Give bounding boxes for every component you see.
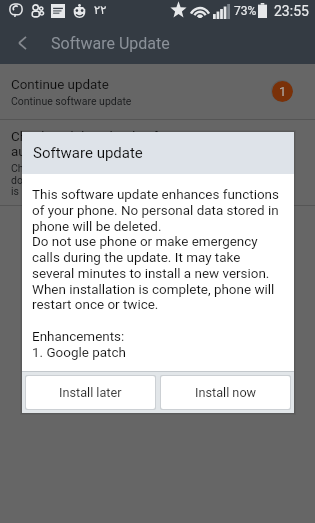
staticText: of your phone. No personal data stored i…: [32, 203, 279, 219]
staticText: Continue update: [11, 77, 109, 93]
staticText: phone will be deleted.: [32, 219, 162, 235]
staticText: 23:55: [274, 3, 309, 19]
button[interactable]: Check and download software: [0, 120, 315, 205]
staticText: restart once or twice.: [32, 297, 159, 313]
staticText: Install later: [59, 385, 122, 400]
button[interactable]: Install later: [26, 376, 155, 409]
staticText: This software update enhances functions: [32, 187, 279, 203]
staticText: 1: [279, 84, 287, 99]
staticText: Software Update: [51, 34, 170, 53]
button[interactable]: Continue update: [0, 64, 315, 119]
staticText: Install now: [195, 385, 257, 400]
staticText: automatically: [11, 144, 92, 160]
staticText: 1. Google patch: [32, 345, 126, 361]
staticText: Check for software updates and: [11, 162, 160, 174]
staticText: Do not use phone or make emergency: [32, 234, 258, 250]
staticText: Check and download software: [11, 129, 192, 145]
staticText: ٢٢: [94, 3, 107, 16]
staticText: several minutes to install a new version…: [32, 266, 270, 282]
button[interactable]: Install now: [161, 376, 290, 409]
staticText: download them automatically when: [11, 174, 177, 186]
staticText: is connected to a Wi-Fi network.: [11, 185, 160, 197]
staticText: When installation is complete, phone wil…: [32, 282, 275, 298]
staticText: Enhancements:: [32, 329, 125, 345]
staticText: calls during the update. It may take: [32, 250, 241, 266]
staticText: Software update: [33, 144, 143, 162]
staticText: 73%: [234, 4, 257, 18]
staticText: Continue software update: [11, 95, 132, 107]
button[interactable]: Back: [0, 22, 44, 64]
